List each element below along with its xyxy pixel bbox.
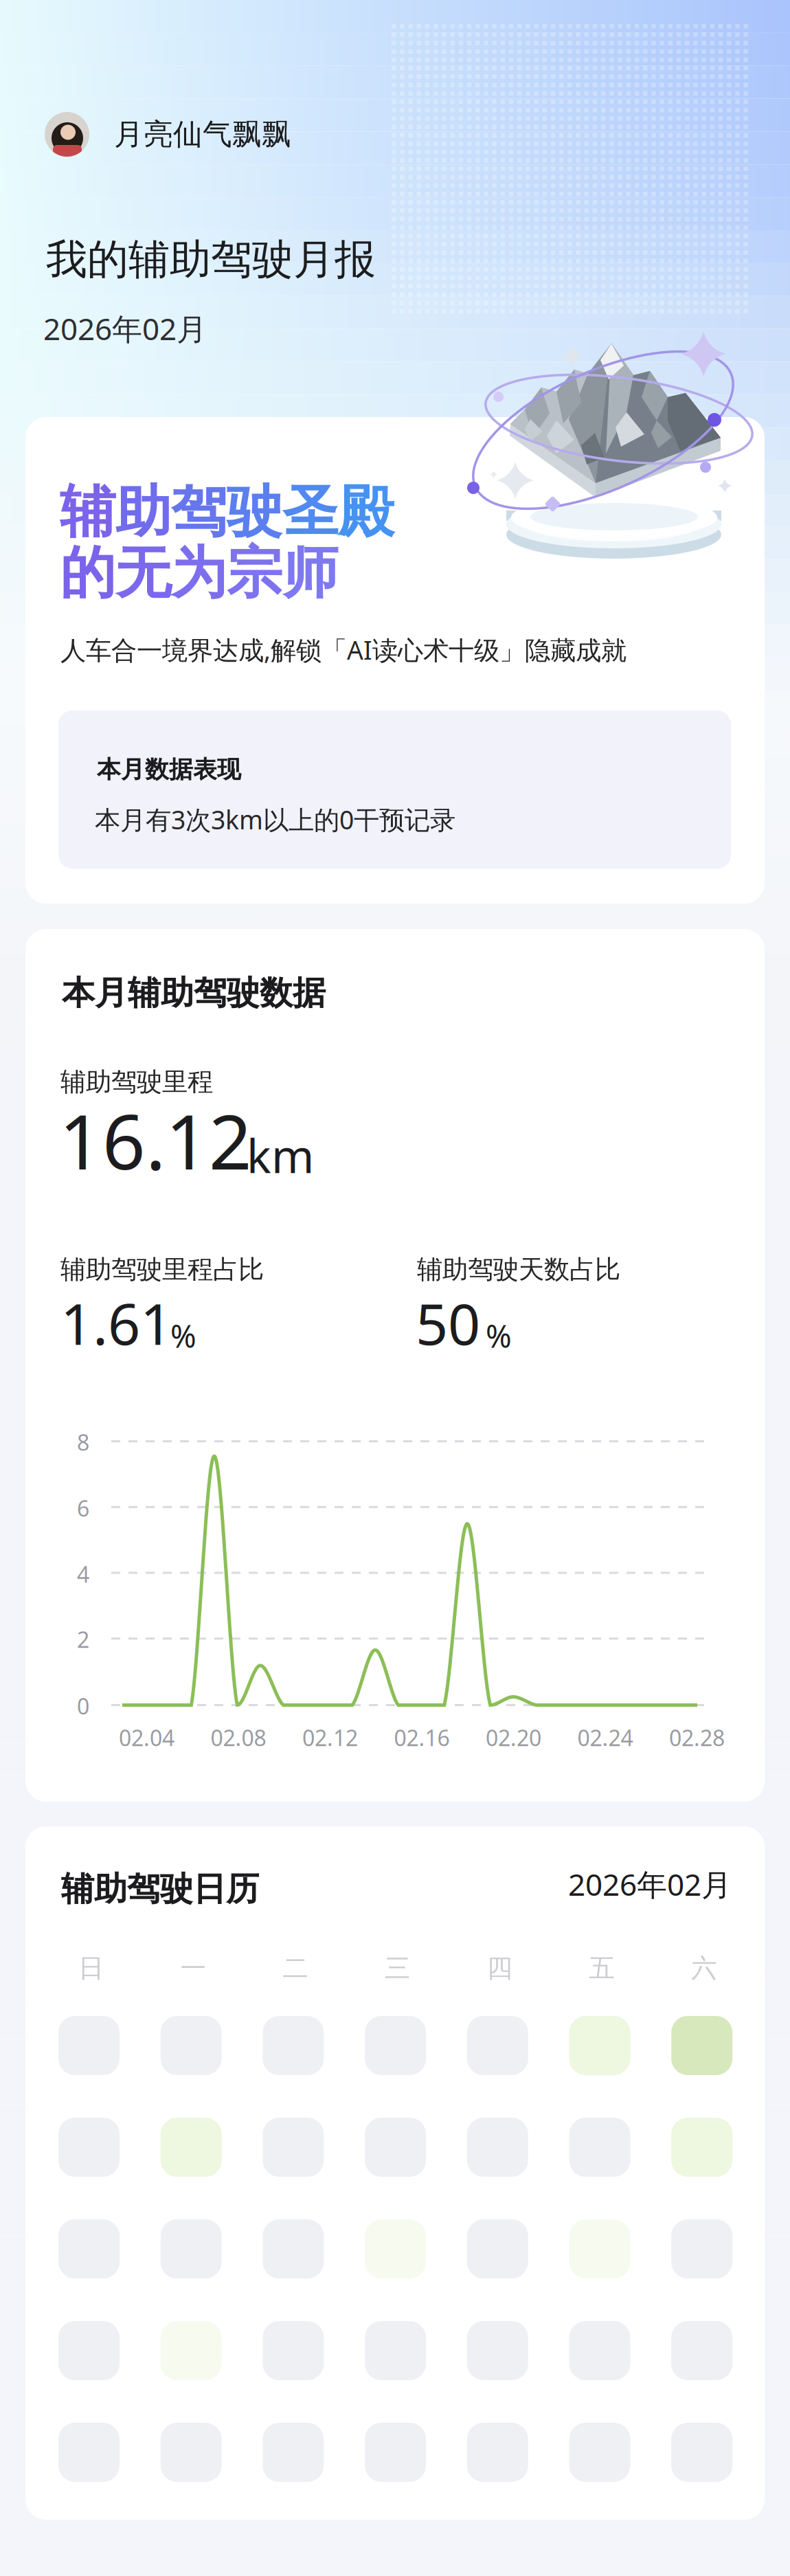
staticText: 一 [180, 1952, 206, 1984]
staticText: 2026年02月 [43, 308, 207, 349]
staticText: 二 [283, 1952, 308, 1984]
staticText: 16.12 [59, 1089, 252, 1191]
staticText: 02.12 [302, 1723, 358, 1753]
staticText: 四 [487, 1952, 512, 1984]
staticText: 02.20 [486, 1723, 541, 1753]
staticText: 辅助驾驶日历 [61, 1868, 259, 1910]
staticText: 辅助驾驶里程占比 [60, 1253, 264, 1286]
staticText: 本月辅助驾驶数据 [62, 972, 326, 1014]
staticText: 我的辅助驾驶月报 [46, 234, 376, 286]
staticText: 本月有3次3km以上的0干预记录 [95, 802, 455, 837]
staticText: 师 [282, 538, 338, 608]
staticText: 五 [589, 1952, 614, 1984]
staticText: 殿 [338, 477, 394, 547]
staticText: 六 [691, 1952, 717, 1984]
staticText: 0 [77, 1691, 89, 1721]
staticText: 辅助驾驶天数占比 [417, 1253, 620, 1286]
staticText: 月亮仙气飘飘 [114, 116, 291, 153]
staticText: % [486, 1314, 512, 1357]
staticText: 6 [77, 1493, 89, 1523]
staticText: 4 [77, 1559, 89, 1589]
button[interactable]: 月亮仙气飘飘 [0, 102, 321, 166]
staticText: km [247, 1124, 314, 1187]
staticText: 本月数据表现 [97, 754, 241, 784]
staticText: 8 [77, 1427, 89, 1457]
staticText: % [170, 1314, 196, 1357]
staticText: 2 [77, 1624, 89, 1654]
staticText: 无 [115, 538, 171, 608]
staticText: 助 [115, 477, 171, 547]
staticText: 02.24 [577, 1723, 633, 1753]
staticText: 2026年02月 [568, 1863, 732, 1905]
staticText: 为 [171, 538, 227, 608]
staticText: 50 [416, 1284, 480, 1362]
staticText: 辅助驾驶里程 [60, 1066, 213, 1098]
staticText: 宗 [227, 538, 282, 608]
staticText: 人车合一境界达成,解锁「AI读心术十级」隐藏成就 [60, 632, 627, 667]
staticText: 02.08 [211, 1723, 266, 1753]
staticText: 辅 [60, 477, 115, 547]
staticText: 圣 [282, 477, 338, 547]
staticText: 驾 [171, 477, 227, 547]
staticText: 02.16 [394, 1723, 450, 1753]
staticText: 日 [78, 1952, 104, 1984]
staticText: 1.61 [60, 1284, 172, 1362]
staticText: 02.28 [669, 1723, 725, 1753]
staticText: 驶 [227, 477, 282, 547]
staticText: 的 [60, 538, 115, 608]
staticText: 02.04 [119, 1723, 174, 1753]
staticText: 三 [385, 1952, 410, 1984]
